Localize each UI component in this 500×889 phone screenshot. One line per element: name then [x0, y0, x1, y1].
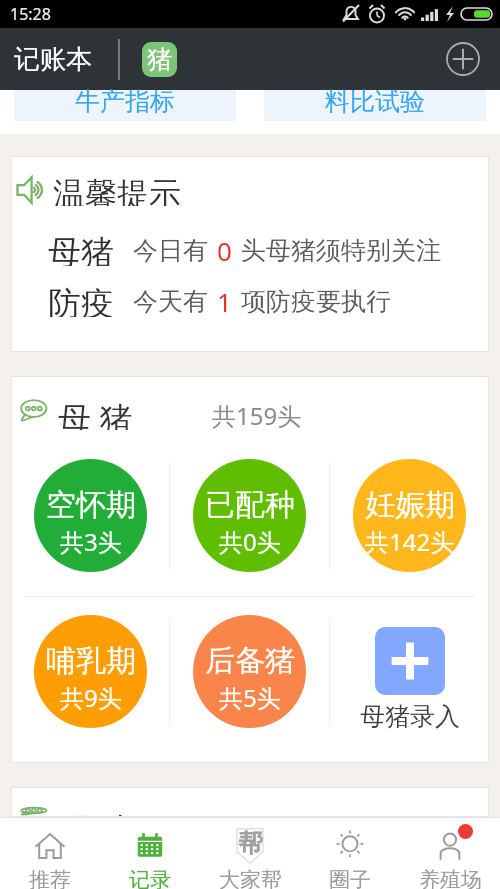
staticText: 母猪录入 [360, 701, 460, 732]
button[interactable]: 空怀期 [34, 459, 147, 572]
staticText: 帮 [238, 828, 263, 859]
staticText: 头母猪须特别关注 [241, 235, 441, 266]
staticText: 肥 猪 [58, 807, 133, 817]
button[interactable]: 帮 [200, 817, 300, 889]
button[interactable]: 推荐 [0, 817, 100, 889]
staticText: 母 猪 [58, 396, 133, 430]
staticText: 共9头 [60, 681, 122, 714]
button[interactable]: Add [445, 41, 481, 77]
button[interactable]: 养殖场 [400, 817, 500, 889]
staticText: 猪 [147, 44, 172, 75]
staticText: 共142头 [365, 525, 455, 558]
staticText: 0 [217, 233, 232, 267]
staticText: 记录 [129, 867, 171, 889]
staticText: 今天有 [133, 286, 208, 317]
staticText: 温馨提示 [53, 174, 181, 206]
staticText: 大家帮 [219, 867, 282, 889]
button[interactable]: 圈子 [300, 817, 400, 889]
button[interactable]: 料比试验 [264, 90, 486, 121]
button[interactable]: 后备猪 [193, 615, 306, 728]
staticText: 已配种 [205, 486, 295, 524]
staticText: 共3头 [60, 525, 122, 558]
staticText: 防疫 [48, 283, 114, 317]
staticText: 共159头 [212, 399, 302, 432]
staticText: 圈子 [329, 867, 371, 889]
staticText: 项防疫要执行 [241, 286, 391, 317]
staticText: 1 [217, 284, 232, 318]
button[interactable]: 猪 [142, 42, 177, 77]
button[interactable]: 记录 [100, 817, 200, 889]
staticText: 共0头 [219, 525, 281, 558]
staticText: 共5头 [219, 681, 281, 714]
button[interactable]: 已配种 [193, 459, 306, 572]
staticText: 母猪 [48, 232, 114, 266]
staticText: 牛产指标 [75, 86, 175, 117]
staticText: 哺乳期 [46, 642, 136, 680]
button[interactable]: 牛产指标 [14, 90, 236, 121]
staticText: 空怀期 [46, 486, 136, 524]
staticText: 料比试验 [325, 86, 425, 117]
staticText: 养殖场 [419, 867, 482, 889]
button[interactable]: 妊娠期 [353, 459, 466, 572]
staticText: 后备猪 [205, 642, 295, 680]
button[interactable]: 哺乳期 [34, 615, 147, 728]
button[interactable]: 母猪录入 [360, 627, 460, 732]
staticText: 15:28 [10, 3, 51, 25]
staticText: 记账本 [14, 43, 92, 76]
staticText: 妊娠期 [365, 486, 455, 524]
staticText: 今日有 [133, 235, 208, 266]
staticText: 推荐 [29, 867, 71, 889]
